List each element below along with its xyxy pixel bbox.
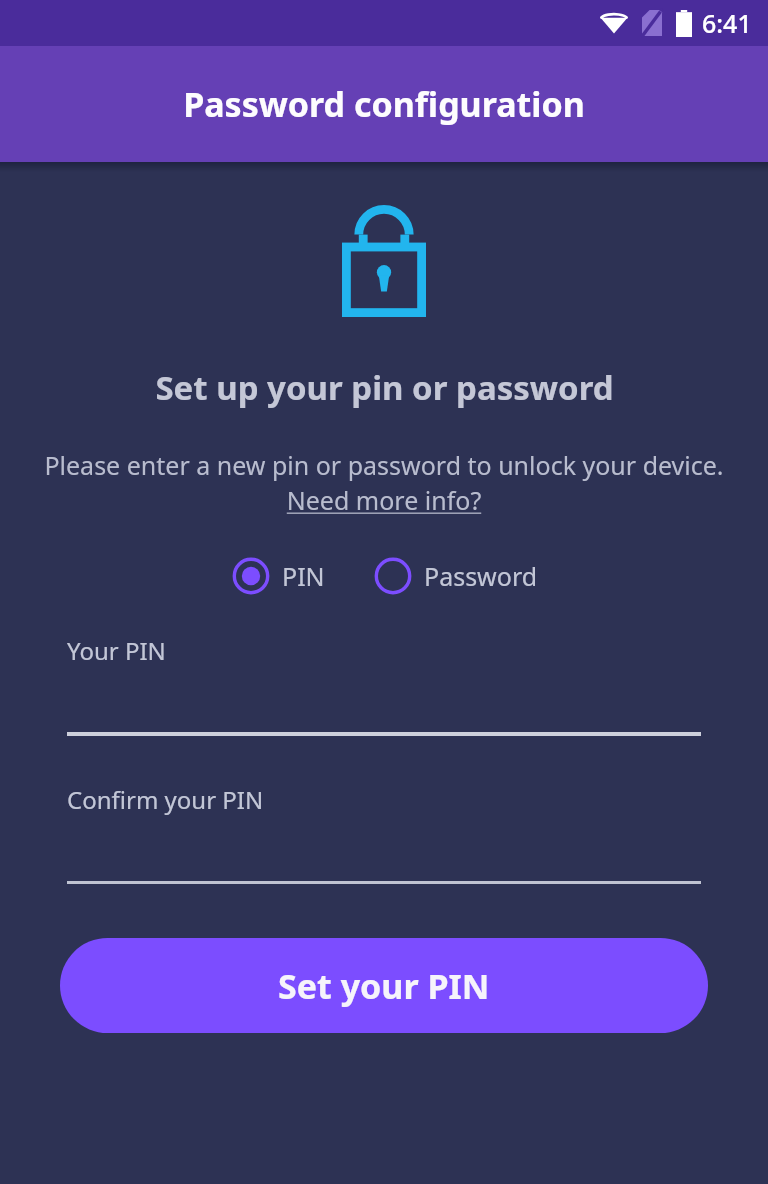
button[interactable]: Confirm your PIN xyxy=(67,783,701,884)
staticText: Password configuration xyxy=(183,81,585,127)
staticText: Your PIN xyxy=(67,634,166,667)
staticText: PIN xyxy=(282,559,325,593)
button[interactable]: Your PIN xyxy=(67,634,701,736)
staticText: 6:41 xyxy=(702,6,752,40)
button[interactable]: Password xyxy=(371,552,540,600)
staticText: Set your PIN xyxy=(278,963,490,1009)
staticText: Set up your pin or password xyxy=(155,365,614,410)
button[interactable]: PIN xyxy=(229,552,327,600)
staticText: Password xyxy=(424,559,538,593)
staticText: Confirm your PIN xyxy=(67,783,264,816)
staticText: Please enter a new pin or password to un… xyxy=(42,448,726,518)
button[interactable]: Set your PIN xyxy=(60,938,708,1033)
